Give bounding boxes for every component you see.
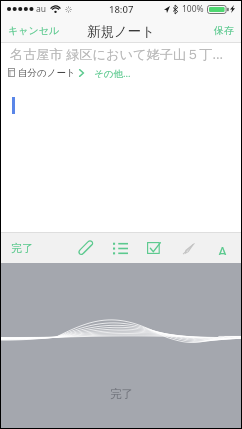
button[interactable]: Attach (77, 239, 95, 257)
button[interactable]: Text format (213, 239, 231, 257)
staticText: 名古屋市 緑区において姥子山５丁... (10, 45, 224, 63)
button[interactable]: 完了 (110, 387, 133, 401)
button[interactable]: Bulleted list (111, 239, 129, 257)
button[interactable]: 完了 (1, 238, 43, 258)
staticText: 18:07 (109, 3, 134, 16)
staticText: au (36, 3, 47, 15)
staticText: 新規ノート (87, 23, 156, 40)
button[interactable]: Checklist (145, 239, 163, 257)
staticText: その他... (94, 67, 131, 78)
button[interactable]: 保存 (208, 22, 241, 39)
button[interactable]: Draw (179, 239, 197, 257)
staticText: 100% (182, 3, 204, 15)
staticText: A (218, 242, 227, 255)
staticText: 自分のノート (18, 67, 76, 78)
button[interactable]: キャンセル (1, 22, 66, 39)
